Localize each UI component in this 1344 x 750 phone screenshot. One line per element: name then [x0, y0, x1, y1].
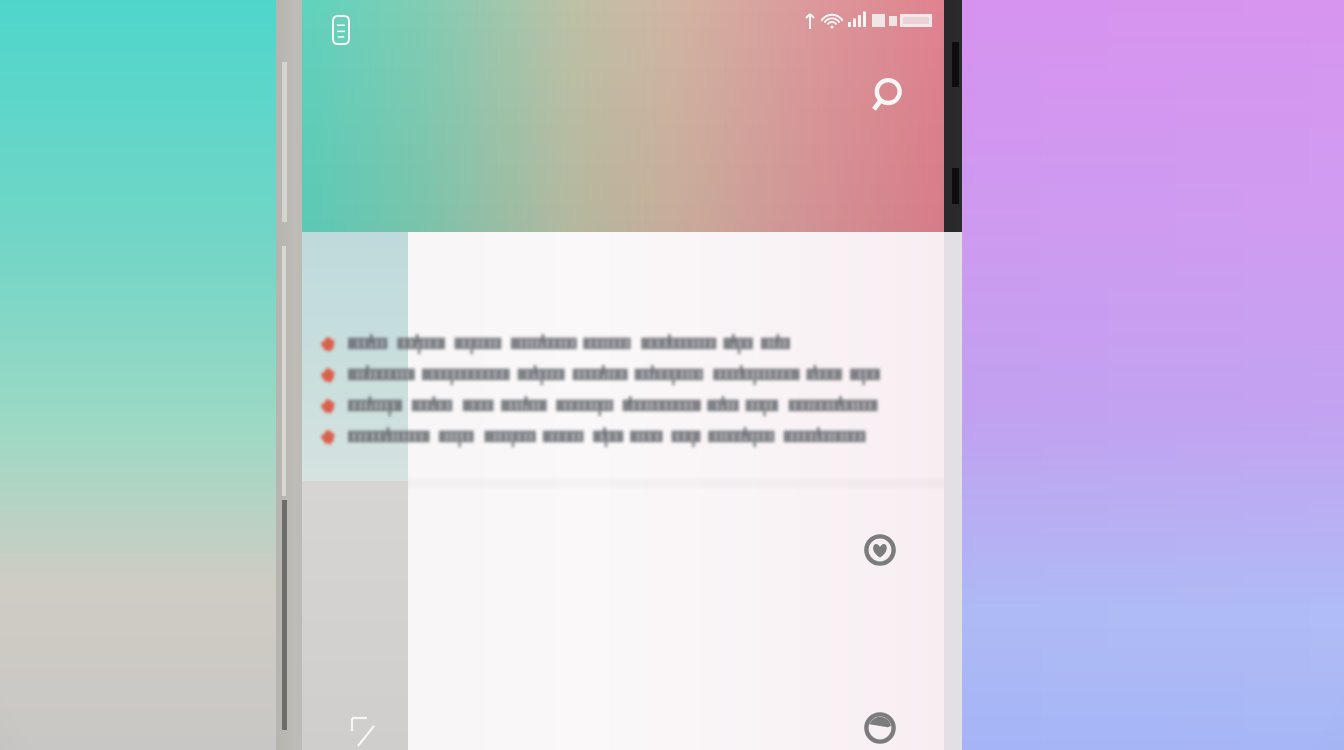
button[interactable]: Favourite: [860, 530, 900, 570]
button[interactable]: More: [860, 708, 900, 748]
button[interactable]: Search: [868, 74, 912, 118]
